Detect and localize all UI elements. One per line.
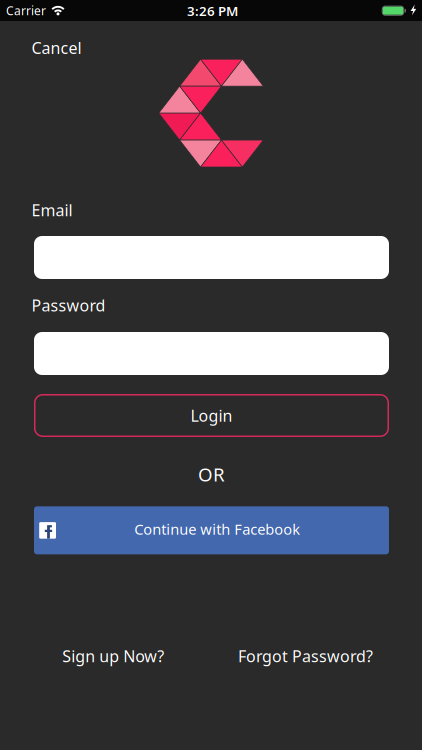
staticText: Cancel — [31, 37, 81, 58]
button[interactable]: Email — [34, 236, 389, 279]
staticText: Carrier — [6, 2, 46, 18]
staticText: 3:26 PM — [187, 2, 238, 20]
button[interactable]: Forgot Password? — [238, 645, 373, 667]
staticText: Login — [190, 405, 232, 426]
staticText: OR — [198, 462, 225, 487]
button[interactable]: Sign up Now? — [62, 645, 164, 667]
button[interactable]: Continue with Facebook — [34, 506, 389, 554]
staticText: Continue with Facebook — [134, 519, 300, 539]
button[interactable]: Cancel — [31, 37, 81, 58]
staticText: Forgot Password? — [238, 645, 373, 667]
staticText: Email — [31, 199, 72, 221]
button[interactable]: Login — [34, 394, 389, 437]
staticText: Password — [31, 295, 105, 316]
button[interactable]: Password — [34, 332, 389, 375]
staticText: Sign up Now? — [62, 645, 164, 667]
